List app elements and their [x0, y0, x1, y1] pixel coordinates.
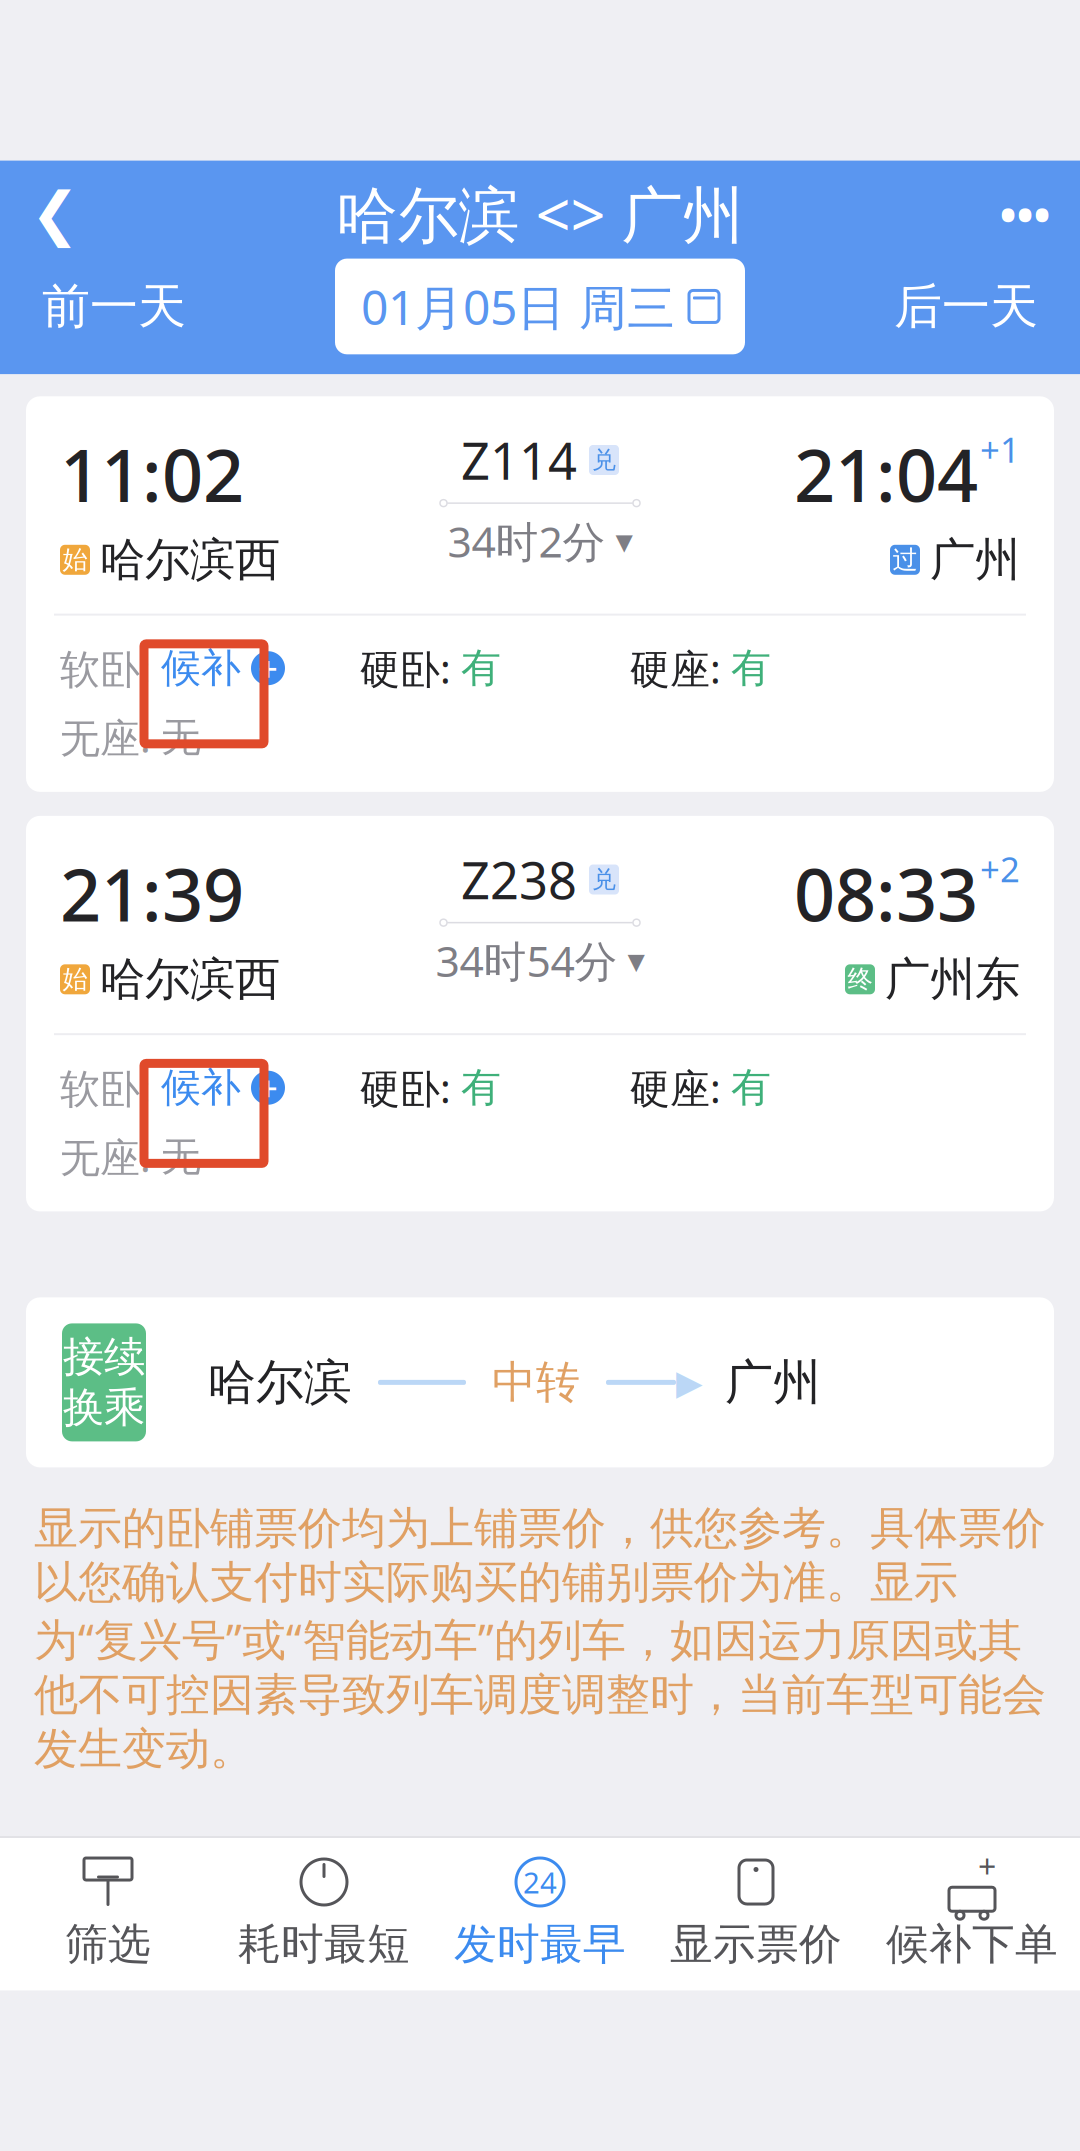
staticText: +	[978, 1845, 996, 1887]
button[interactable]: 11:02	[26, 396, 1054, 792]
staticText: 34时54分	[435, 932, 617, 989]
button[interactable]: 耗时最短	[216, 1842, 432, 1984]
staticText: 硬座:	[630, 1061, 731, 1114]
staticText: 无座:	[60, 711, 161, 764]
staticText: ▶	[676, 1363, 703, 1402]
staticText: ▾	[615, 521, 632, 561]
button[interactable]: 后一天	[860, 263, 1072, 350]
staticText: 广州	[725, 1353, 821, 1412]
staticText: +	[258, 1065, 278, 1111]
staticText: +2	[980, 846, 1020, 892]
staticText: 哈尔滨西	[100, 532, 280, 588]
staticText: 有	[731, 644, 771, 693]
staticText: 11:02	[60, 426, 244, 522]
button[interactable]: More options	[970, 169, 1080, 259]
staticText: 耗时最短	[238, 1918, 410, 1970]
staticText: ▾	[627, 941, 644, 980]
staticText: 21:04	[794, 426, 978, 522]
staticText: 24	[523, 1862, 557, 1901]
staticText: 中转	[492, 1355, 580, 1409]
staticText: 有	[461, 644, 501, 693]
staticText: •••	[999, 183, 1050, 244]
staticText: 软卧:	[60, 642, 161, 695]
staticText: Z114	[461, 426, 577, 494]
staticText: 接续	[63, 1332, 145, 1382]
staticText: 硬座:	[630, 642, 731, 695]
staticText: 兑	[592, 865, 616, 894]
staticText: Z238	[461, 846, 577, 913]
staticText: 哈尔滨 <> 广州	[336, 173, 743, 254]
button[interactable]: 接续	[26, 1297, 1054, 1467]
staticText: 终	[847, 964, 872, 995]
staticText: 显示票价	[670, 1918, 842, 1970]
staticText: 01月05日 周三	[361, 275, 675, 338]
button[interactable]: +	[864, 1842, 1080, 1984]
staticText: 有	[461, 1063, 501, 1112]
staticText: 广州	[930, 532, 1020, 588]
staticText: 发时最早	[454, 1918, 626, 1970]
staticText: 有	[731, 1063, 771, 1112]
staticText: 显示的卧铺票价均为上铺票价，供您参考。具体票价以您确认支付时实际购买的铺别票价为…	[34, 1501, 1046, 1776]
button[interactable]: Back	[0, 169, 110, 259]
staticText: 候补	[161, 644, 241, 693]
staticText: 哈尔滨西	[100, 951, 280, 1007]
staticText: +	[258, 645, 278, 691]
button[interactable]: 24	[432, 1842, 648, 1984]
staticText: 广州东	[885, 951, 1020, 1007]
button[interactable]: 前一天	[8, 263, 220, 350]
staticText: 始	[62, 544, 87, 575]
staticText: 候补下单	[886, 1918, 1058, 1970]
staticText: ❮	[30, 180, 79, 247]
staticText: 候补	[161, 1063, 241, 1112]
staticText: 换乘	[63, 1382, 145, 1433]
staticText: 无座:	[60, 1130, 161, 1183]
staticText: 兑	[592, 445, 616, 475]
staticText: +1	[980, 426, 1020, 472]
button[interactable]: 01月05日 周三	[335, 259, 745, 354]
staticText: 无	[161, 713, 201, 762]
staticText: 21:39	[60, 846, 244, 941]
staticText: 后一天	[894, 277, 1038, 336]
staticText: 哈尔滨	[208, 1353, 352, 1412]
button[interactable]: 显示票价	[648, 1842, 864, 1984]
staticText: 前一天	[42, 277, 186, 336]
staticText: 过	[892, 544, 917, 575]
staticText: 硬卧:	[360, 1061, 461, 1114]
button[interactable]: 筛选	[0, 1842, 216, 1984]
staticText: 硬卧:	[360, 642, 461, 695]
button[interactable]: 21:39	[26, 816, 1054, 1211]
staticText: 始	[62, 964, 87, 995]
staticText: 无	[161, 1132, 201, 1181]
staticText: 08:33	[794, 846, 978, 941]
staticText: 软卧:	[60, 1061, 161, 1114]
staticText: 34时2分	[447, 513, 605, 569]
staticText: 筛选	[65, 1918, 151, 1970]
